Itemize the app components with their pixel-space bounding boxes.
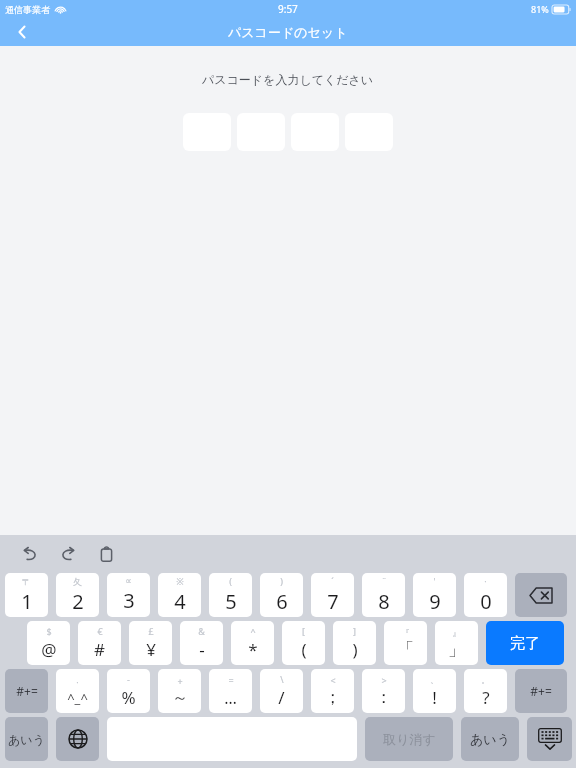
staticText: 9:57 — [278, 2, 298, 16]
button[interactable]: あいう — [461, 717, 519, 761]
staticText: 1 — [21, 588, 33, 615]
button[interactable]: 。 — [464, 669, 507, 713]
button[interactable]: - — [107, 669, 150, 713]
button[interactable]: ¨ — [362, 573, 405, 617]
staticText: 。 — [481, 674, 490, 685]
button[interactable]: ※ — [158, 573, 201, 617]
staticText: % — [121, 686, 136, 709]
button[interactable]: Undo — [14, 538, 46, 570]
button[interactable]: ∝ — [107, 573, 150, 617]
button[interactable]: + — [158, 669, 201, 713]
staticText: ※ — [176, 575, 184, 587]
staticText: #+= — [16, 683, 38, 699]
button[interactable]: Back — [0, 18, 44, 46]
staticText: 2 — [72, 588, 84, 615]
staticText: 5 — [225, 588, 237, 615]
button[interactable]: #+= — [5, 669, 48, 713]
staticText: 3 — [123, 587, 135, 614]
staticText: ) — [280, 575, 283, 587]
staticText: ´ — [331, 575, 334, 587]
staticText: $ — [46, 625, 52, 637]
staticText: 「 — [397, 639, 414, 660]
button[interactable]: Backspace — [515, 573, 567, 617]
staticText: … — [224, 687, 237, 709]
staticText: € — [97, 625, 103, 637]
staticText: ( — [301, 638, 307, 661]
staticText: + — [177, 675, 183, 687]
staticText: # — [94, 638, 105, 661]
staticText: / — [278, 686, 285, 709]
staticText: 9 — [429, 588, 441, 615]
button[interactable]: Redo — [52, 538, 84, 570]
button[interactable]: あいう — [5, 717, 48, 761]
staticText: 完了 — [510, 634, 540, 653]
staticText: ^_^ — [67, 689, 88, 707]
button[interactable]: [ — [282, 621, 325, 665]
button[interactable]: 完了 — [486, 621, 564, 665]
staticText: 7 — [327, 588, 339, 615]
button[interactable]: \ — [260, 669, 303, 713]
staticText: あいう — [8, 732, 45, 747]
staticText: ( — [229, 575, 232, 587]
staticText: < — [330, 674, 336, 686]
button[interactable]: 〒 — [5, 573, 48, 617]
button[interactable]: € — [78, 621, 121, 665]
button[interactable]: Hide keyboard — [527, 717, 572, 761]
staticText: パスコードのセット — [228, 24, 348, 40]
staticText: £ — [148, 625, 154, 637]
staticText: パスコードを入力してください — [202, 72, 374, 87]
staticText: · — [484, 575, 487, 587]
staticText: · — [76, 676, 79, 688]
staticText: 8 — [378, 588, 390, 615]
button[interactable]: £ — [129, 621, 172, 665]
button[interactable]: ( — [209, 573, 252, 617]
staticText: & — [198, 625, 205, 637]
staticText: 0 — [480, 588, 492, 615]
staticText: 『 — [401, 627, 410, 638]
button[interactable]: 、 — [413, 669, 456, 713]
staticText: 6 — [276, 588, 288, 615]
staticText: \ — [280, 673, 284, 685]
staticText: ； — [324, 687, 341, 708]
button[interactable]: 取り消す — [365, 717, 453, 761]
staticText: * — [248, 638, 258, 661]
button[interactable]: Paste — [90, 538, 122, 570]
button[interactable]: ' — [413, 573, 456, 617]
button[interactable]: ´ — [311, 573, 354, 617]
button[interactable]: · — [464, 573, 507, 617]
staticText: ? — [482, 686, 490, 709]
staticText: ) — [352, 638, 358, 661]
staticText: > — [381, 674, 387, 686]
button[interactable]: $ — [27, 621, 70, 665]
button[interactable]: ] — [333, 621, 376, 665]
staticText: 』 — [452, 627, 461, 638]
staticText: ' — [433, 575, 436, 587]
button[interactable]: · — [56, 669, 99, 713]
staticText: ¥ — [146, 638, 156, 661]
staticText: ： — [375, 687, 392, 708]
button[interactable]: 『 — [384, 621, 427, 665]
button[interactable]: & — [180, 621, 223, 665]
staticText: ∝ — [125, 576, 132, 586]
staticText: 〒 — [22, 576, 31, 587]
button[interactable]: 』 — [435, 621, 478, 665]
button[interactable]: < — [311, 669, 354, 713]
staticText: 81% — [531, 3, 549, 15]
staticText: @ — [41, 638, 57, 661]
button[interactable]: ) — [260, 573, 303, 617]
button[interactable]: > — [362, 669, 405, 713]
staticText: 4 — [174, 588, 186, 615]
button[interactable]: Change keyboard language — [56, 717, 99, 761]
staticText: 、 — [430, 674, 439, 685]
button[interactable]: #+= — [515, 669, 567, 713]
button[interactable]: = — [209, 669, 252, 713]
staticText: ～ — [172, 688, 188, 708]
button[interactable]: 夂 — [56, 573, 99, 617]
staticText: - — [199, 638, 205, 661]
button[interactable]: ^ — [231, 621, 274, 665]
